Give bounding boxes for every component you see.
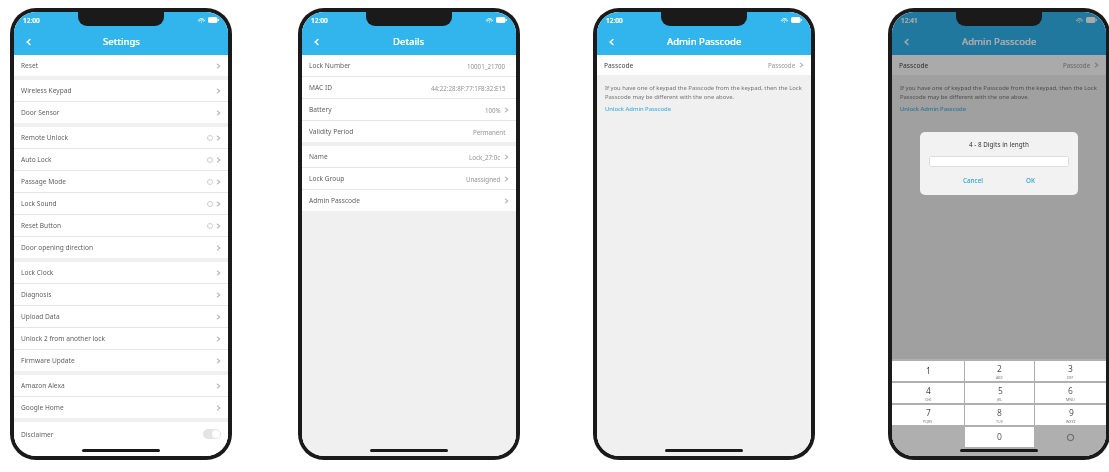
staticText: PQRS (923, 419, 933, 424)
staticText: Unlock Admin Passcode (605, 105, 671, 113)
button[interactable]: 4 (892, 383, 964, 403)
button[interactable]: Reset (14, 55, 228, 76)
staticText: Permanent (473, 128, 506, 136)
button[interactable]: Lock Sound (14, 193, 228, 214)
staticText: JKL (997, 397, 1003, 402)
button[interactable]: Cancel (955, 174, 991, 187)
staticText: 0 (997, 431, 1002, 443)
button[interactable]: Validity Period (302, 121, 516, 142)
button[interactable]: Back (20, 33, 38, 51)
staticText: 12:00 (606, 16, 623, 25)
button[interactable]: 6 (1035, 383, 1106, 403)
staticText: 3 (1068, 363, 1073, 375)
button[interactable]: OK (1018, 174, 1043, 187)
staticText: Name (309, 152, 328, 161)
staticText: DEF (1067, 375, 1074, 380)
button[interactable]: Lock Number (302, 55, 516, 76)
button[interactable]: 3 (1035, 361, 1106, 381)
button[interactable]: 5 (965, 383, 1034, 403)
staticText: Reset (21, 61, 39, 70)
button[interactable]: Door opening direction (14, 237, 228, 258)
staticText: Diagnosis (21, 290, 52, 299)
staticText: If you have one of keypad the Passcode f… (605, 84, 803, 100)
staticText: Passcode (768, 61, 796, 69)
staticText: Unassigned (466, 175, 501, 183)
staticText: Validity Period (309, 127, 354, 136)
button[interactable]: Remote Unlock (14, 127, 228, 148)
button[interactable]: Firmware Update (14, 350, 228, 371)
staticText: 12:00 (23, 16, 40, 25)
button[interactable]: MAC ID (302, 77, 516, 98)
button[interactable]: Disclaimer (14, 422, 228, 446)
staticText: Cancel (963, 176, 983, 185)
button[interactable]: Amazon Alexa (14, 375, 228, 396)
staticText: Unlock Admin Passcode (900, 105, 966, 113)
staticText: Amazon Alexa (21, 381, 65, 390)
staticText: 100% (485, 106, 501, 114)
staticText: Upload Data (21, 312, 60, 321)
button[interactable]: Back (308, 33, 326, 51)
button[interactable]: Google Home (14, 397, 228, 418)
button[interactable]: Auto Lock (14, 149, 228, 170)
staticText: 2 (997, 363, 1002, 375)
staticText: Passcode (1063, 61, 1091, 69)
staticText: Disclaimer (21, 430, 54, 439)
button[interactable]: Unlock Admin Passcode (900, 105, 966, 113)
staticText: Lock Clock (21, 268, 54, 277)
staticText: Admin Passcode (309, 196, 360, 205)
button[interactable]: 2 (965, 361, 1034, 381)
staticText: OK (1026, 176, 1035, 185)
button[interactable]: Reset Button (14, 215, 228, 236)
button[interactable]: Wireless Keypad (14, 80, 228, 101)
button[interactable]: Lock Group (302, 168, 516, 189)
button[interactable]: Back (603, 33, 621, 51)
staticText: Door Sensor (21, 108, 60, 117)
button[interactable]: 8 (965, 405, 1034, 425)
button[interactable]: Upload Data (14, 306, 228, 327)
staticText: ABC (996, 375, 1003, 380)
button[interactable]: 7 (892, 405, 964, 425)
staticText: GHI (925, 397, 932, 402)
staticText: Google Home (21, 403, 64, 412)
staticText: 12:00 (311, 16, 328, 25)
staticText: 4 - 8 Digits in length (969, 140, 1029, 149)
button[interactable]: Passcode (597, 55, 811, 75)
button[interactable]: Passcode (892, 55, 1106, 75)
staticText: 5 (998, 385, 1003, 397)
staticText: 6 (1068, 385, 1073, 397)
staticText: Lock Group (309, 174, 345, 183)
staticText: 12:41 (901, 16, 918, 25)
button[interactable]: 0 (965, 427, 1034, 447)
button[interactable]: Back (898, 33, 916, 51)
button[interactable]: Name (302, 146, 516, 167)
staticText: Remote Unlock (21, 133, 69, 142)
button[interactable]: Passage Mode (14, 171, 228, 192)
staticText: Battery (309, 105, 332, 114)
staticText: WXYZ (1066, 419, 1076, 424)
button[interactable]: Door Sensor (14, 102, 228, 123)
staticText: Lock Sound (21, 199, 57, 208)
button[interactable]: Unlock Admin Passcode (605, 105, 671, 113)
button[interactable]: Admin Passcode (302, 190, 516, 211)
staticText: Firmware Update (21, 356, 75, 365)
button[interactable]: Unlock 2 from another lock (14, 328, 228, 349)
button[interactable]: Diagnosis (14, 284, 228, 305)
staticText: Wireless Keypad (21, 86, 72, 95)
staticText: MNO (1066, 397, 1075, 402)
staticText: 10001_21700 (467, 62, 506, 70)
button[interactable]: 1 (892, 361, 964, 381)
button[interactable]: Battery (302, 99, 516, 120)
staticText: If you have one of keypad the Passcode f… (900, 84, 1098, 100)
staticText: 44:22:28:8F:77:1F8:32:E15 (431, 84, 506, 92)
staticText: Reset Button (21, 221, 61, 230)
button[interactable]: Lock Clock (14, 262, 228, 283)
staticText: 7 (926, 407, 931, 419)
staticText: Passage Mode (21, 177, 66, 186)
button[interactable]: 9 (1035, 405, 1106, 425)
staticText: MAC ID (309, 83, 332, 92)
staticText: Settings (103, 35, 140, 48)
button[interactable] (929, 156, 1069, 167)
button[interactable]: Backspace (1035, 427, 1106, 447)
staticText: Passcode (604, 61, 634, 70)
staticText: 9 (1069, 407, 1074, 419)
